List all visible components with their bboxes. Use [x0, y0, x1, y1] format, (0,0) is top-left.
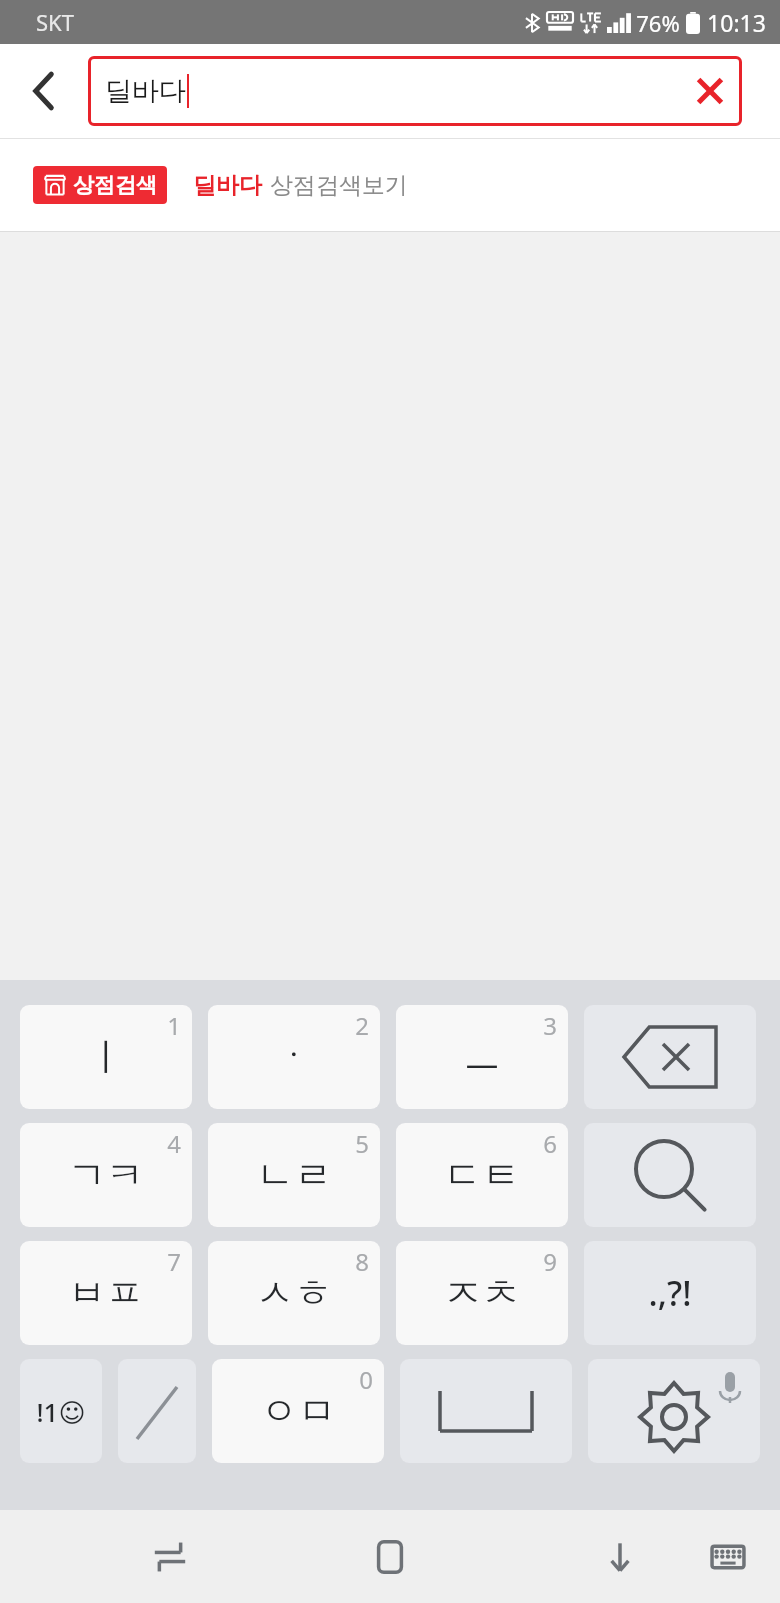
staticText: 7	[167, 1245, 181, 1278]
button[interactable]: Recents	[130, 1510, 210, 1603]
staticText: 1	[167, 1009, 181, 1042]
staticText: 8	[355, 1245, 369, 1278]
button[interactable]: ㆍ	[208, 1005, 380, 1109]
button[interactable]: Change keyboard	[688, 1510, 768, 1603]
staticText: ㅈㅊ	[444, 1269, 520, 1317]
staticText: 상점검색	[73, 172, 157, 198]
button[interactable]: Clear	[682, 63, 738, 119]
button[interactable]: ㅣ	[20, 1005, 192, 1109]
staticText: ㅣ	[87, 1033, 125, 1081]
button[interactable]: ㅡ	[396, 1005, 568, 1109]
button[interactable]: ㅂㅍ	[20, 1241, 192, 1345]
button[interactable]: Backspace	[584, 1005, 756, 1109]
staticText: 3	[543, 1009, 557, 1042]
staticText: 딜바다	[193, 171, 262, 200]
button[interactable]: ㄷㅌ	[396, 1123, 568, 1227]
staticText: 상점검색보기	[270, 171, 408, 200]
button[interactable]: ㄱㅋ	[20, 1123, 192, 1227]
staticText: 10:13	[707, 7, 766, 38]
staticText: ㅇㅁ	[260, 1387, 336, 1435]
button[interactable]: Home	[350, 1510, 430, 1603]
button[interactable]: !1☺	[20, 1359, 102, 1463]
button[interactable]: ㅅㅎ	[208, 1241, 380, 1345]
staticText: .,?!	[648, 1270, 692, 1316]
staticText: SKT	[36, 7, 74, 37]
button[interactable]: .,?!	[584, 1241, 756, 1345]
button[interactable]: 상점검색	[0, 139, 780, 231]
button[interactable]: Space	[400, 1359, 572, 1463]
staticText: 0	[359, 1363, 373, 1396]
button[interactable]: Back	[12, 59, 76, 123]
staticText: !1☺	[36, 1394, 86, 1429]
staticText: 76%	[636, 8, 680, 38]
button[interactable]: ㄴㄹ	[208, 1123, 380, 1227]
staticText: ㄷㅌ	[444, 1151, 520, 1199]
staticText: 딜바다	[105, 74, 186, 108]
staticText: ㄱㅋ	[68, 1151, 144, 1199]
button[interactable]: ㅈㅊ	[396, 1241, 568, 1345]
staticText: 6	[543, 1127, 557, 1160]
staticText: ㆍ	[275, 1033, 313, 1081]
button[interactable]: ㅇㅁ	[212, 1359, 384, 1463]
staticText: ㅂㅍ	[68, 1269, 144, 1317]
staticText: 4	[167, 1127, 181, 1160]
staticText: 5	[355, 1127, 369, 1160]
button[interactable]: Keyboard settings	[588, 1359, 760, 1463]
button[interactable]: Hide keyboard	[580, 1510, 660, 1603]
button[interactable]: Korean English toggle	[118, 1359, 196, 1463]
staticText: 9	[543, 1245, 557, 1278]
staticText: ㅅㅎ	[256, 1269, 332, 1317]
staticText: 2	[355, 1009, 369, 1042]
staticText: ㅡ	[463, 1033, 501, 1081]
button[interactable]: 딜바다	[88, 56, 742, 126]
button[interactable]: Search	[584, 1123, 756, 1227]
staticText: ㄴㄹ	[256, 1151, 332, 1199]
